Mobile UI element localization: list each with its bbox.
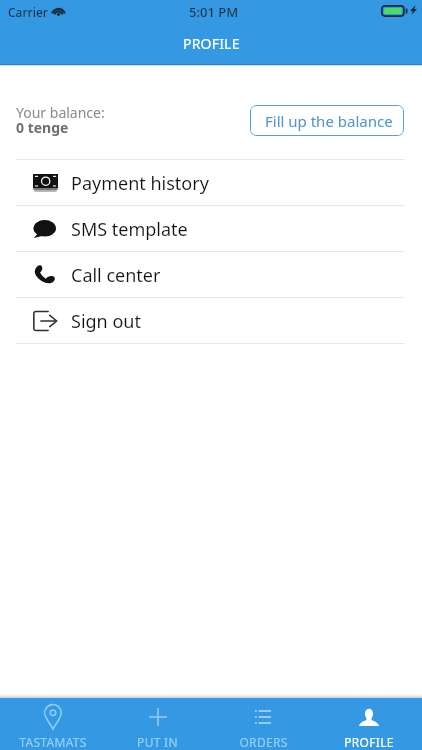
staticText: Your balance: xyxy=(16,103,105,122)
staticText: ORDERS xyxy=(239,734,288,750)
staticText: Payment history xyxy=(71,171,209,196)
staticText: PUT IN xyxy=(137,734,178,750)
button[interactable]: Orders xyxy=(210,698,316,750)
staticText: Carrier xyxy=(8,4,48,20)
staticText: Call center xyxy=(71,263,161,288)
button[interactable]: Call center xyxy=(0,252,422,297)
staticText: PROFILE xyxy=(344,734,394,750)
staticText: Fill up the balance xyxy=(265,111,393,131)
button[interactable]: Payment history xyxy=(0,160,422,205)
button[interactable]: Profile xyxy=(316,698,422,750)
staticText: 0 tenge xyxy=(16,118,69,137)
staticText: TASTAMATS xyxy=(19,734,87,750)
button[interactable]: Put in xyxy=(105,698,210,750)
button[interactable]: Sign out xyxy=(0,298,422,343)
staticText: SMS template xyxy=(71,217,188,242)
staticText: PROFILE xyxy=(183,34,240,53)
button[interactable]: SMS template xyxy=(0,206,422,251)
button[interactable]: Fill up the balance xyxy=(250,105,404,136)
staticText: Sign out xyxy=(71,309,141,334)
staticText: 5:01 PM xyxy=(189,3,239,21)
button[interactable]: Tastamats xyxy=(0,698,105,750)
